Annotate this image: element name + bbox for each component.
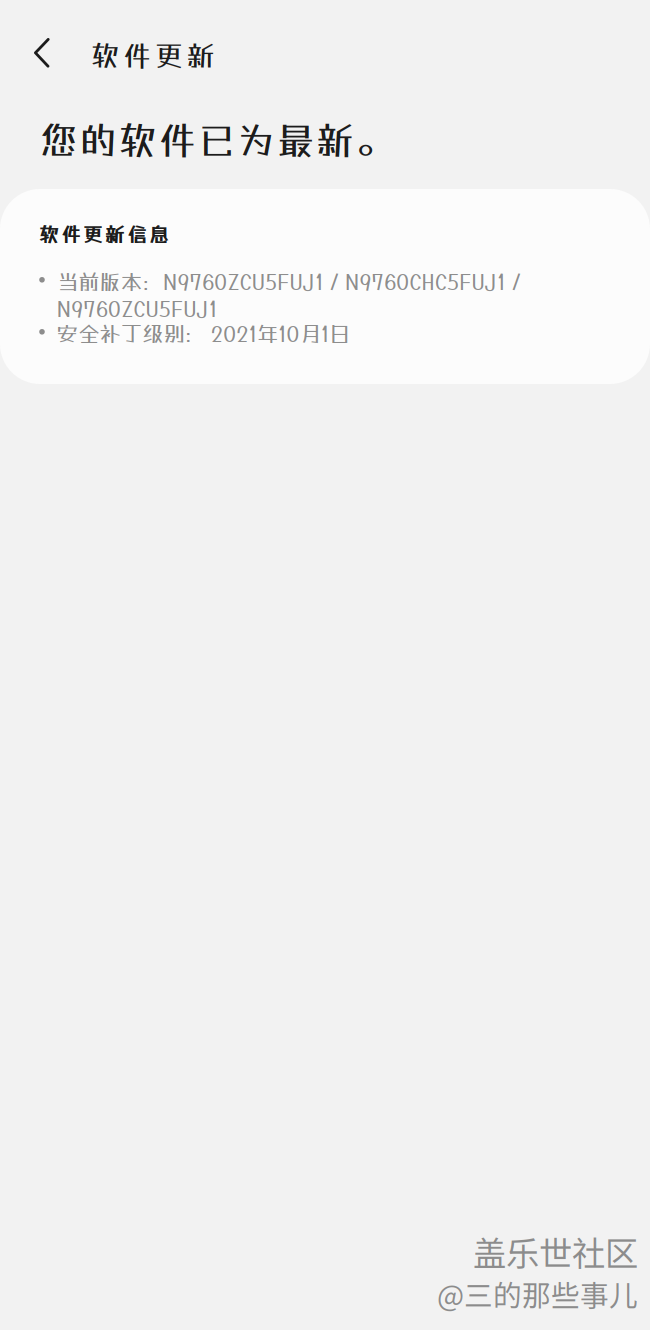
- staticText: 盖乐世社区: [473, 1227, 638, 1275]
- staticText: 软件更新信息: [39, 223, 168, 246]
- staticText: 安全补丁级别： 2021年10月1日: [57, 321, 350, 346]
- staticText: 您的软件已为最新。: [40, 118, 393, 162]
- staticText: 软件更新: [91, 39, 215, 72]
- button[interactable]: 软件更新: [0, 20, 280, 88]
- staticText: N9760ZCU5FUJ1: [57, 296, 217, 321]
- staticText: 当前版本：N9760ZCU5FUJ1 / N9760CHC5FUJ1 /: [57, 269, 522, 294]
- staticText: @三的那些事儿: [437, 1273, 638, 1314]
